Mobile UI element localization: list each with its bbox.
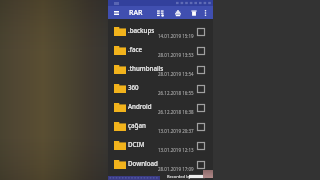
staticText: 26.12.2018 16:38 bbox=[158, 109, 194, 115]
button[interactable]: Select .face bbox=[197, 47, 205, 55]
button[interactable]: Select 360 bbox=[197, 85, 205, 93]
staticText: 28.01.2019 17:09 bbox=[158, 166, 194, 172]
button[interactable]: .face bbox=[108, 40, 213, 59]
button[interactable]: 360 bbox=[108, 78, 213, 97]
staticText: Download bbox=[128, 159, 158, 167]
staticText: 13.01.2019 12:13 bbox=[158, 147, 194, 153]
button[interactable]: çağan bbox=[108, 116, 213, 135]
button[interactable]: Select Download bbox=[197, 161, 205, 169]
staticText: çağan bbox=[128, 121, 146, 129]
staticText: DCIM bbox=[128, 140, 145, 148]
staticText: 13.01.2019 20:37 bbox=[158, 128, 194, 134]
staticText: 28.01.2019 13:53 bbox=[158, 52, 194, 58]
button[interactable]: Extract files bbox=[171, 6, 184, 19]
staticText: .backups bbox=[128, 26, 155, 34]
staticText: .face bbox=[128, 45, 143, 53]
staticText: 26.12.2018 16:55 bbox=[158, 90, 194, 96]
button[interactable]: Select çağan bbox=[197, 123, 205, 131]
button[interactable]: Select Android bbox=[197, 104, 205, 112]
button[interactable]: Select .backups bbox=[197, 28, 205, 36]
button[interactable]: More options bbox=[199, 6, 212, 19]
button[interactable]: DCIM bbox=[108, 135, 213, 154]
staticText: 28.01.2019 13:54 bbox=[158, 71, 194, 77]
staticText: Recorded by bbox=[167, 174, 191, 179]
staticText: RAR bbox=[129, 8, 143, 18]
button[interactable]: Android bbox=[108, 97, 213, 116]
button[interactable]: Compress to archive bbox=[154, 6, 167, 19]
button[interactable]: .backups bbox=[108, 21, 213, 40]
button[interactable]: Download bbox=[108, 154, 213, 173]
button[interactable]: Select .thumbnails bbox=[197, 66, 205, 74]
button[interactable]: Select DCIM bbox=[197, 142, 205, 150]
staticText: 360 bbox=[128, 83, 139, 91]
button[interactable]: .thumbnails bbox=[108, 59, 213, 78]
button[interactable]: Navigation menu bbox=[110, 6, 123, 19]
staticText: Android bbox=[128, 102, 152, 110]
staticText: .thumbnails bbox=[128, 64, 164, 72]
button[interactable]: Delete bbox=[187, 6, 200, 19]
staticText: 14.01.2019 15:19 bbox=[158, 33, 194, 39]
